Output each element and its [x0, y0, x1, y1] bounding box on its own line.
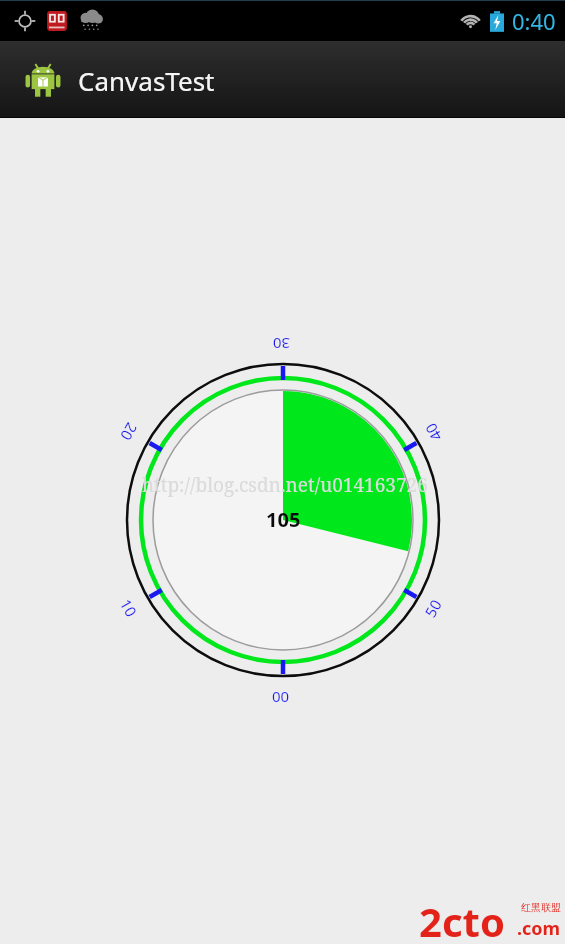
staticText: 00 — [272, 686, 290, 706]
staticText: 50 — [420, 595, 446, 621]
other: Wi-Fi — [459, 10, 482, 33]
staticText: 20 — [116, 419, 142, 445]
staticText: 10 — [116, 595, 142, 621]
staticText: 红黑联盟 — [521, 901, 561, 914]
staticText: 105 — [266, 506, 301, 533]
staticText: 0:40 — [512, 6, 556, 36]
other: Battery charging — [490, 10, 504, 33]
staticText: 2cto — [419, 894, 505, 944]
staticText: .com — [517, 916, 561, 941]
staticText: CanvasTest — [78, 63, 215, 98]
button[interactable]: CanvasTest — [0, 41, 565, 118]
other: GPS — [14, 10, 36, 32]
other: NetEase — [46, 10, 68, 32]
other: Weather — [77, 7, 104, 34]
staticText: 30 — [272, 334, 290, 354]
staticText: 40 — [420, 419, 446, 445]
staticText: http://blog.csdn.net/u014163726 — [142, 472, 428, 498]
